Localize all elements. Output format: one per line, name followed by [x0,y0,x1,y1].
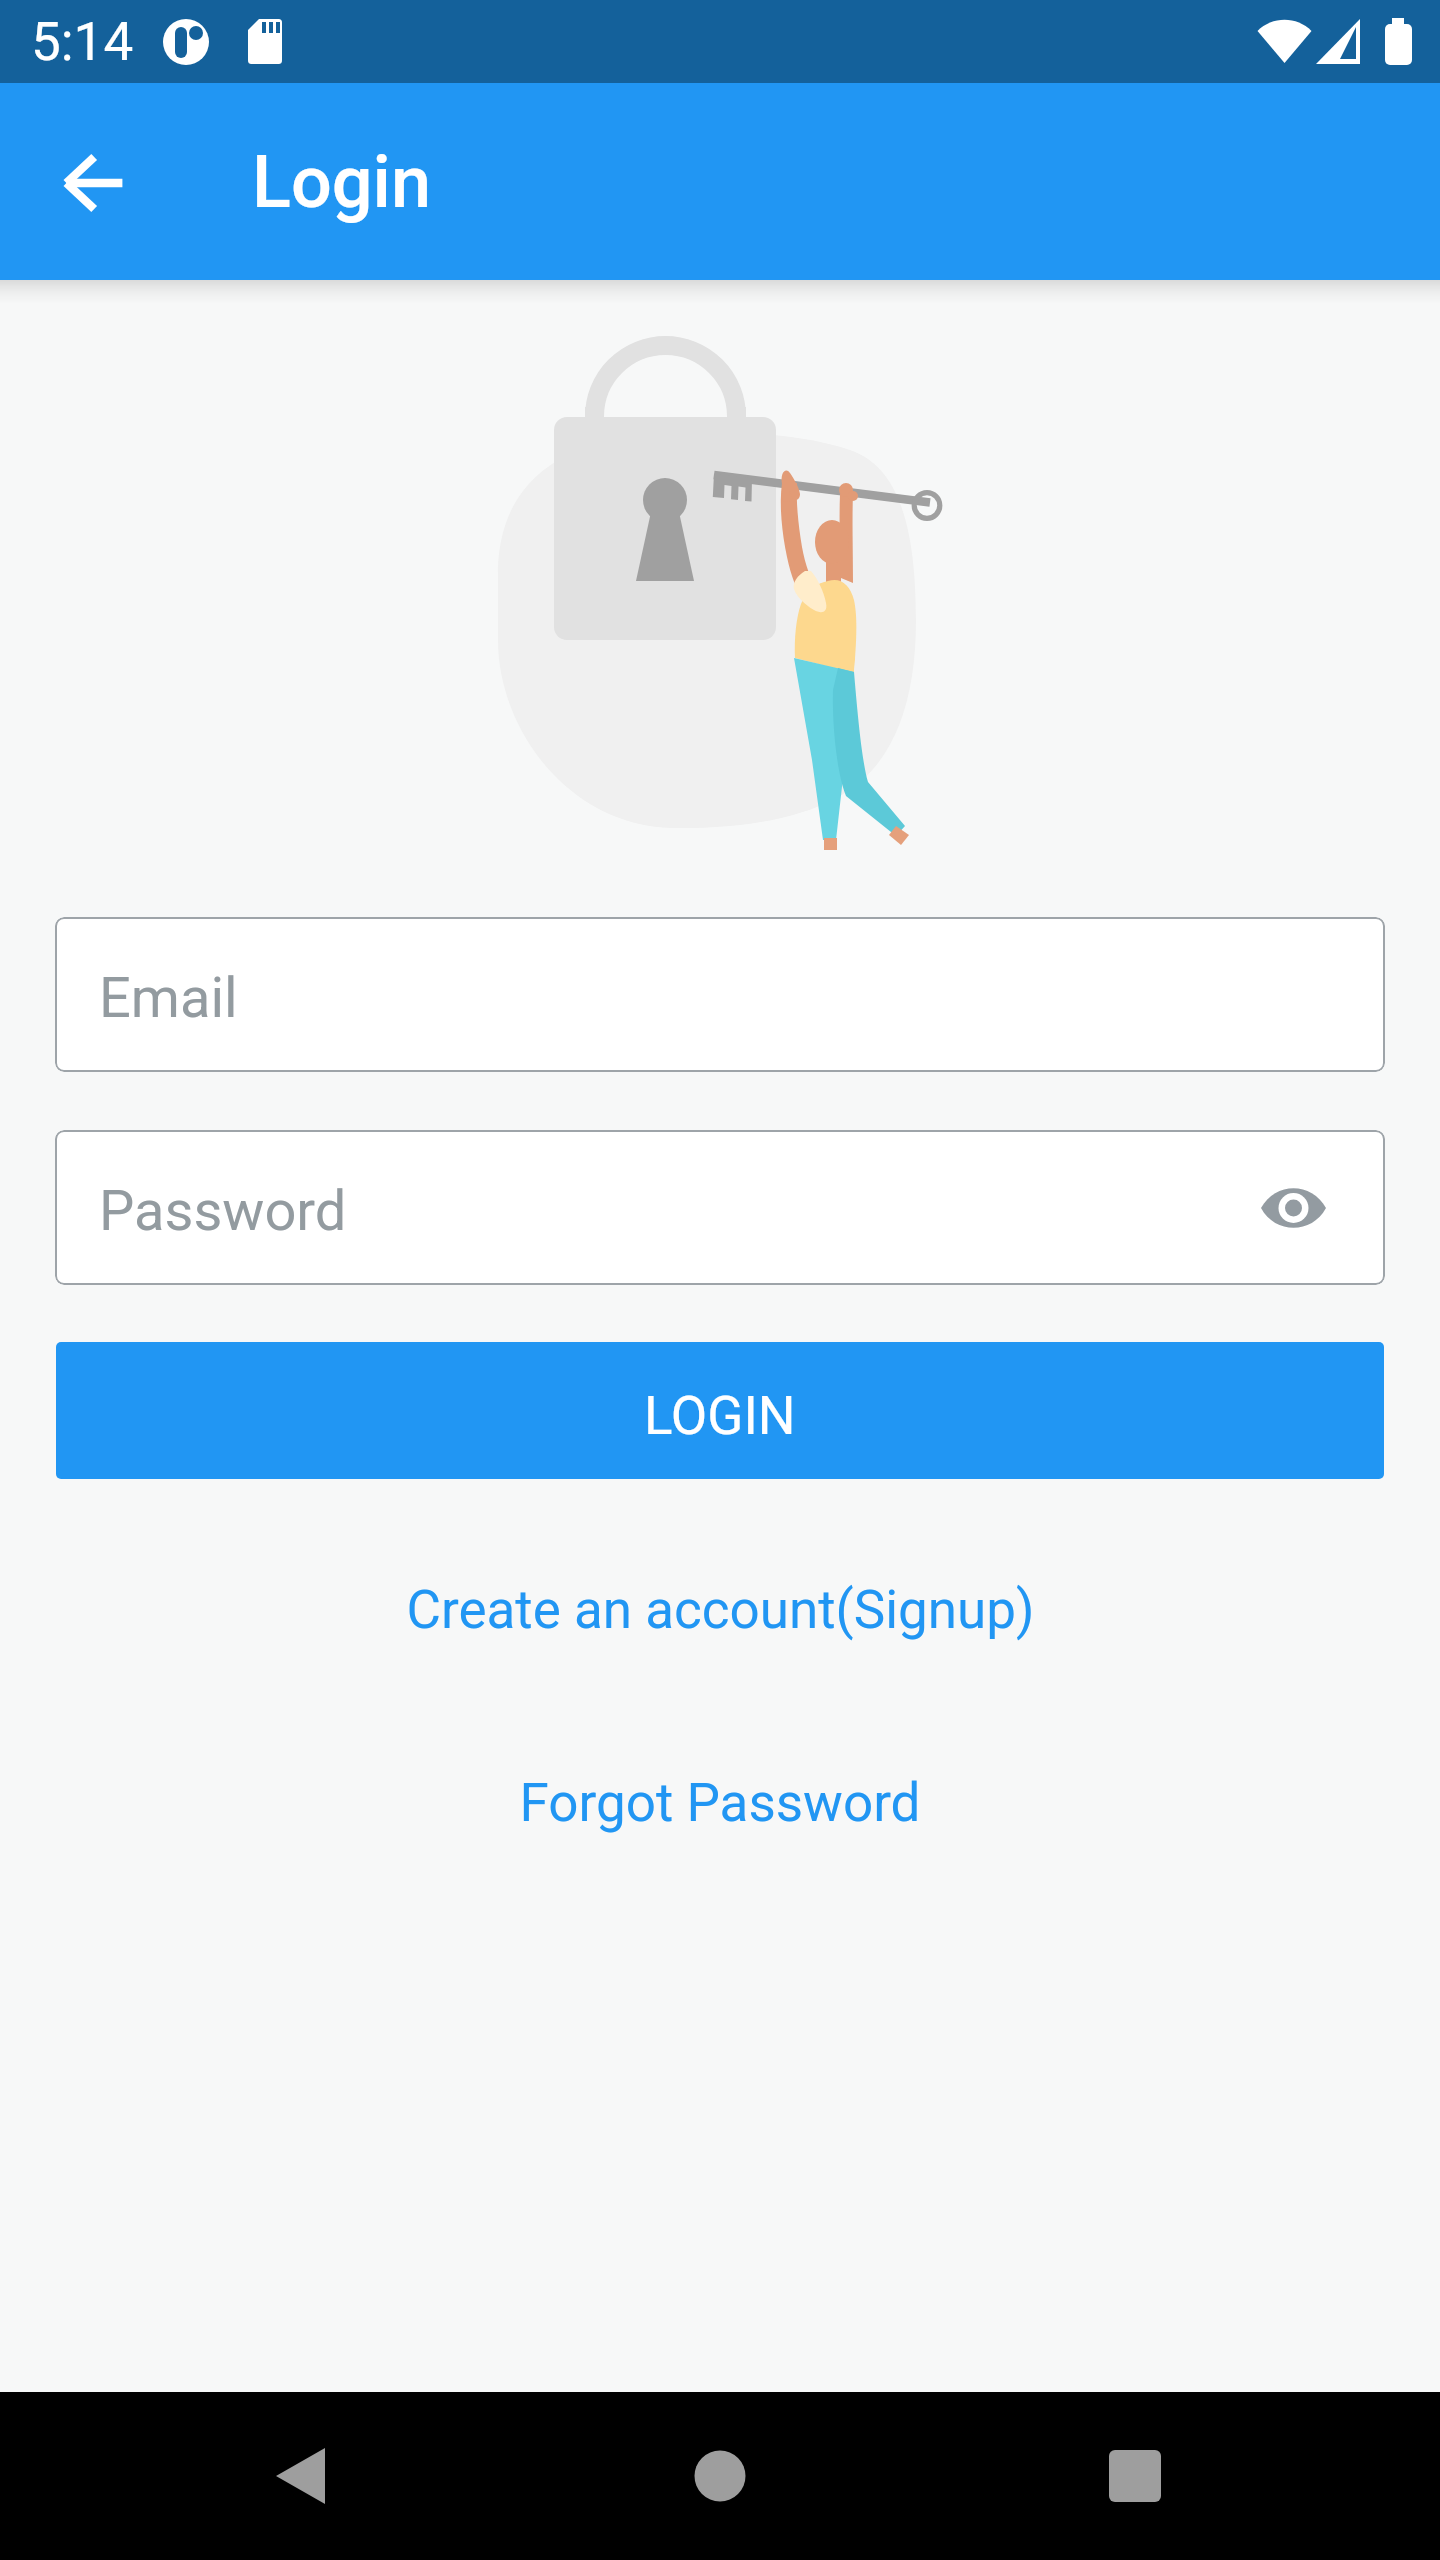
staticText: Create an account(Signup) [406,1579,1035,1641]
staticText: Password [99,1178,347,1244]
staticText: Login [252,140,431,224]
button[interactable]: Back [40,127,150,237]
button[interactable]: Email [55,917,1385,1072]
button[interactable]: LOGIN [56,1342,1384,1479]
button[interactable]: Password [55,1130,1385,1285]
staticText: LOGIN [644,1385,796,1447]
staticText: Email [99,965,238,1031]
staticText: 5:14 [31,11,134,73]
staticText: Forgot Password [519,1772,921,1834]
button[interactable]: Forgot Password [0,1772,1440,1834]
button[interactable]: Create an account(Signup) [0,1579,1440,1641]
button[interactable]: Show password [1261,1181,1326,1235]
